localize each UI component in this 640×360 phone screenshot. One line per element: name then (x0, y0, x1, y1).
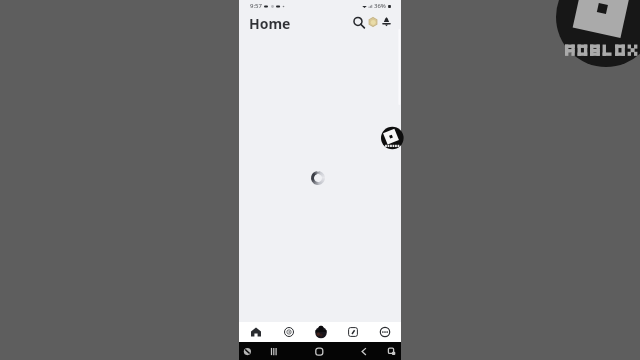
button[interactable]: Chat (337, 322, 369, 342)
staticText: 36% (374, 2, 386, 10)
button[interactable]: Discover (272, 322, 305, 342)
staticText: 9:57 (250, 2, 262, 10)
staticText: Home (249, 14, 291, 33)
button[interactable]: Notifications (382, 17, 391, 26)
button[interactable]: Search (352, 16, 365, 29)
button[interactable]: Avatar (305, 322, 337, 342)
button[interactable]: More (369, 322, 401, 342)
button[interactable]: Home (239, 322, 272, 342)
button[interactable]: Robux balance (366, 15, 380, 29)
